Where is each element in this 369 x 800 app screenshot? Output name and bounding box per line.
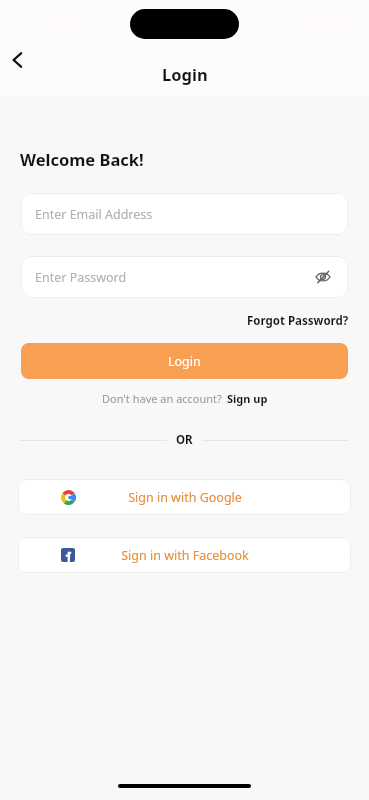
button[interactable]: Sign in with Google xyxy=(18,479,351,515)
button[interactable]: Enter Email Address xyxy=(21,193,348,235)
button[interactable]: Show password xyxy=(308,262,338,292)
staticText: Welcome Back! xyxy=(20,148,144,170)
staticText: Login xyxy=(162,63,208,85)
button[interactable]: Enter Password xyxy=(21,256,348,298)
staticText: Sign in with Google xyxy=(128,489,242,506)
staticText: Login xyxy=(168,353,201,370)
staticText: Enter Email Address xyxy=(35,206,153,223)
button[interactable]: Forgot Password? xyxy=(243,310,353,332)
staticText: OR xyxy=(176,432,193,448)
button[interactable]: Sign in with Facebook xyxy=(18,537,351,573)
button[interactable]: Sign up xyxy=(227,391,268,406)
staticText: Sign up xyxy=(227,391,268,406)
staticText: Don't have an account? xyxy=(102,391,222,406)
staticText: Forgot Password? xyxy=(247,313,349,329)
button[interactable]: Back xyxy=(0,38,40,82)
staticText: Enter Password xyxy=(35,269,127,286)
staticText: Sign in with Facebook xyxy=(121,547,249,564)
button[interactable]: Login xyxy=(21,343,348,379)
